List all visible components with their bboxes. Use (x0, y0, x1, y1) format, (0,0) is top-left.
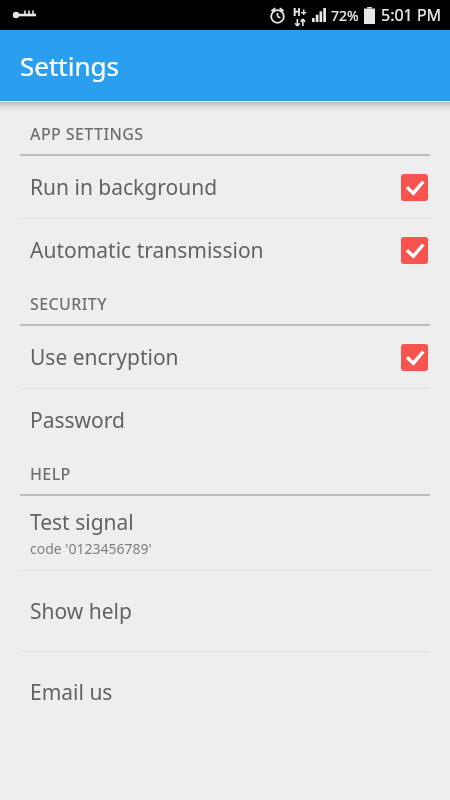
button[interactable]: Show help (0, 571, 450, 651)
staticText: Test signal (30, 508, 134, 537)
staticText: 5:01 PM (381, 4, 442, 26)
staticText: Use encryption (30, 343, 401, 372)
button[interactable]: Password (0, 389, 450, 451)
staticText: HELP (30, 463, 71, 485)
staticText: H+ (293, 5, 307, 19)
button[interactable]: Run in background (0, 156, 450, 218)
staticText: 72% (331, 6, 359, 25)
staticText: Email us (30, 678, 113, 707)
button[interactable]: Test signal (0, 496, 450, 570)
staticText: Password (30, 406, 125, 435)
staticText: SECURITY (30, 293, 107, 315)
staticText: code '0123456789' (30, 539, 152, 558)
staticText: Automatic transmission (30, 236, 401, 265)
button[interactable]: Email us (0, 652, 450, 732)
other: Checked (401, 174, 428, 201)
staticText: Settings (20, 48, 119, 83)
staticText: APP SETTINGS (30, 123, 144, 145)
button[interactable]: Automatic transmission (0, 219, 450, 281)
other: Checked (401, 237, 428, 264)
staticText: Show help (30, 597, 132, 626)
staticText: Run in background (30, 173, 401, 202)
other: Checked (401, 344, 428, 371)
button[interactable]: Use encryption (0, 326, 450, 388)
